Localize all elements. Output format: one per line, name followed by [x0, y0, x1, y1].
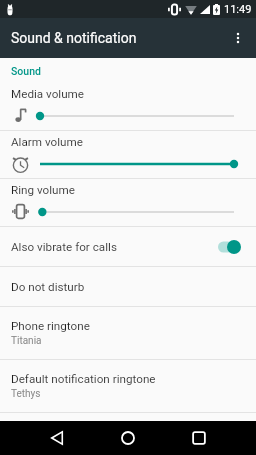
staticText: 11:49 [224, 3, 252, 16]
staticText: Titania [11, 335, 42, 347]
staticText: Sound [11, 65, 41, 77]
button[interactable]: Phone ringtone [0, 307, 256, 359]
button[interactable]: Back [35, 421, 78, 455]
staticText: Media volume [11, 87, 85, 101]
staticText: Also vibrate for calls [11, 240, 218, 254]
staticText: Phone ringtone [11, 319, 90, 333]
button[interactable]: Home [106, 421, 149, 455]
staticText: Default notification ringtone [11, 372, 156, 386]
button[interactable]: Recent apps [177, 421, 220, 455]
staticText: Ring volume [11, 183, 75, 197]
button[interactable]: Default notification ringtone [0, 360, 256, 412]
button[interactable]: Do not disturb [0, 267, 256, 306]
staticText: Do not disturb [11, 280, 85, 294]
button[interactable]: Media volume [0, 83, 256, 130]
button[interactable]: Ring volume [0, 179, 256, 226]
staticText: Tethys [11, 388, 41, 400]
staticText: Sound & notification [11, 30, 137, 46]
staticText: Alarm volume [11, 135, 83, 149]
button[interactable]: Alarm volume [0, 131, 256, 178]
button[interactable]: More options [220, 20, 256, 56]
button[interactable]: Also vibrate for calls [0, 227, 256, 266]
